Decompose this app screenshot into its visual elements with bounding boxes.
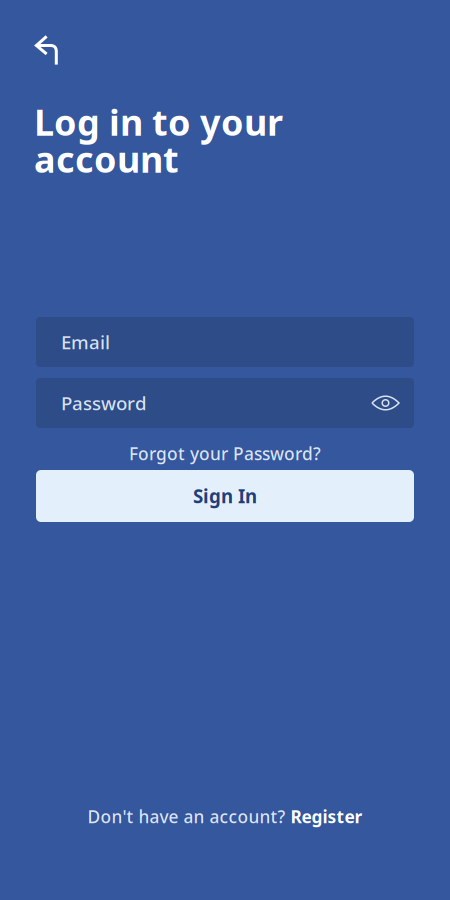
button[interactable]: Sign In — [36, 470, 414, 522]
button[interactable]: Register — [290, 805, 362, 828]
staticText: Register — [290, 805, 362, 828]
button[interactable]: Email — [36, 317, 414, 367]
staticText: Email — [61, 330, 110, 354]
staticText: account — [34, 135, 179, 183]
staticText: Forgot your Password? — [129, 442, 321, 465]
button[interactable]: Password — [36, 378, 414, 428]
button[interactable]: Forgot your Password? — [36, 428, 414, 470]
button[interactable]: Back — [0, 0, 68, 74]
staticText: Don't have an account? — [87, 805, 285, 828]
staticText: Sign In — [193, 484, 257, 508]
staticText: Password — [61, 391, 147, 415]
staticText: Log in to your — [34, 98, 283, 146]
